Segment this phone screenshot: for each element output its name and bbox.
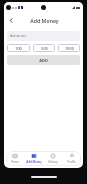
button[interactable]: History [43, 151, 62, 166]
staticText: History [48, 160, 58, 164]
staticText: 100 [15, 46, 22, 51]
staticText: Home [11, 160, 19, 164]
staticText: Amount [10, 33, 26, 39]
staticText: Profile [67, 160, 76, 164]
staticText: Add Money [30, 17, 59, 24]
staticText: 1000 [65, 46, 74, 51]
button[interactable]: Back [5, 14, 18, 27]
staticText: ADD [39, 58, 48, 63]
button[interactable]: Profile [62, 151, 81, 166]
button[interactable]: 500 [33, 44, 55, 52]
button[interactable]: Home [6, 151, 24, 166]
button[interactable]: Amount [7, 31, 80, 41]
button[interactable]: ADD [7, 55, 80, 65]
button[interactable]: Add Money [24, 151, 43, 166]
button[interactable]: 1000 [58, 44, 80, 52]
staticText: 500 [41, 46, 48, 51]
staticText: Add Money [26, 160, 42, 164]
button[interactable]: 100 [7, 44, 30, 52]
